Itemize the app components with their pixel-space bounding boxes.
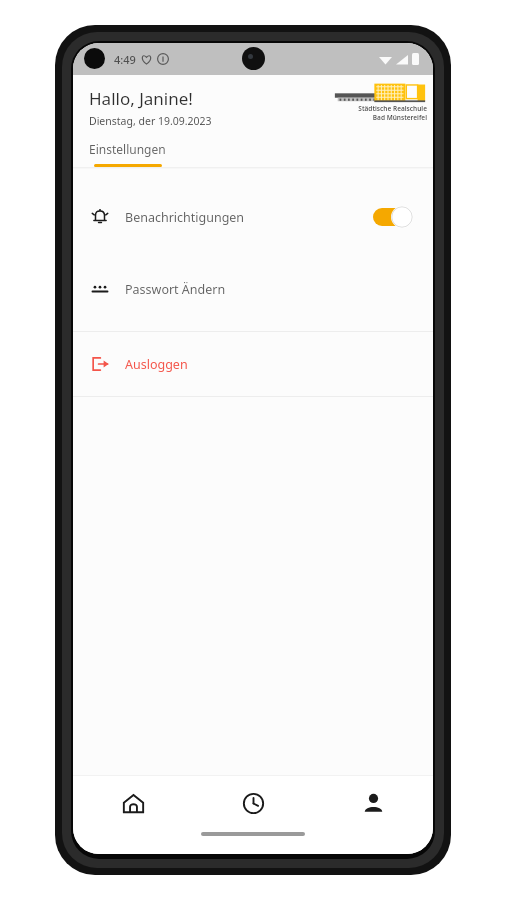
other: Passwort Ändern: [91, 280, 109, 298]
button[interactable]: Einstellungen: [73, 135, 182, 167]
other: Ausloggen: [91, 355, 109, 373]
staticText: Hallo, Janine!: [89, 87, 193, 110]
staticText: Bad Münstereifel: [372, 113, 427, 122]
button[interactable]: Verlauf: [193, 776, 313, 830]
other: Benachrichtigungen: [91, 208, 109, 226]
staticText: Ausloggen: [125, 356, 188, 373]
button[interactable]: Ausloggen: [73, 332, 433, 396]
button[interactable]: Benachrichtigungen: [73, 197, 433, 237]
staticText: Benachrichtigungen: [125, 209, 245, 226]
button[interactable]: Passwort Ändern: [73, 269, 433, 309]
staticText: Passwort Ändern: [125, 281, 226, 298]
staticText: 4:49: [114, 52, 136, 67]
button[interactable]: Benachrichtigungen Schalter: [373, 206, 415, 228]
staticText: Städtische Realschule: [358, 104, 427, 113]
staticText: Einstellungen: [89, 141, 166, 157]
button[interactable]: Startseite: [73, 776, 193, 830]
button[interactable]: Profil: [313, 776, 433, 830]
staticText: Dienstag, der 19.09.2023: [89, 114, 212, 128]
